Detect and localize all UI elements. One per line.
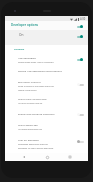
staticText: Enable view attribute inspection	[18, 112, 55, 115]
staticText: Developer options	[11, 23, 39, 27]
button[interactable]	[5, 78, 88, 94]
staticText: taking a bug report	[18, 89, 37, 92]
button[interactable]: Toggle on	[76, 24, 85, 29]
button[interactable]: Toggle off	[76, 112, 85, 117]
staticText: On	[19, 33, 24, 37]
button[interactable]	[5, 95, 88, 107]
button[interactable]	[5, 30, 88, 45]
button[interactable]: Toggle off	[76, 82, 85, 87]
button[interactable]	[5, 121, 88, 133]
button[interactable]: Back	[19, 153, 28, 161]
button[interactable]	[5, 54, 88, 68]
staticText: Select mock location app	[18, 97, 47, 100]
button[interactable]: Recent apps	[65, 153, 74, 161]
button[interactable]: Toggle on	[76, 57, 85, 62]
staticText: Show a button in the power menu for	[18, 85, 54, 88]
staticText: Revoke USB debugging authorizations	[18, 69, 62, 72]
staticText: USB debugging	[18, 56, 36, 59]
button[interactable]	[5, 67, 88, 77]
staticText: Wait for debugger	[18, 138, 39, 141]
staticText: 4:00	[80, 17, 86, 21]
staticText: debugger to attach before executing	[18, 147, 54, 150]
staticText: No debug application set	[18, 128, 43, 131]
staticText: No mock location app set	[18, 102, 43, 105]
staticText: Debugged application waits for	[18, 143, 49, 146]
button[interactable]: Toggle on	[76, 34, 85, 39]
button[interactable]: Toggle disabled	[76, 139, 85, 144]
staticText: Debugging	[14, 48, 25, 51]
button[interactable]: Home	[43, 153, 52, 161]
button[interactable]	[5, 110, 88, 120]
staticText: Select debug app	[18, 123, 38, 126]
staticText: Bug report shortcut	[18, 80, 41, 83]
button[interactable]	[5, 21, 88, 30]
button[interactable]	[5, 136, 88, 153]
staticText: Debug mode when USB is connected	[18, 61, 54, 64]
